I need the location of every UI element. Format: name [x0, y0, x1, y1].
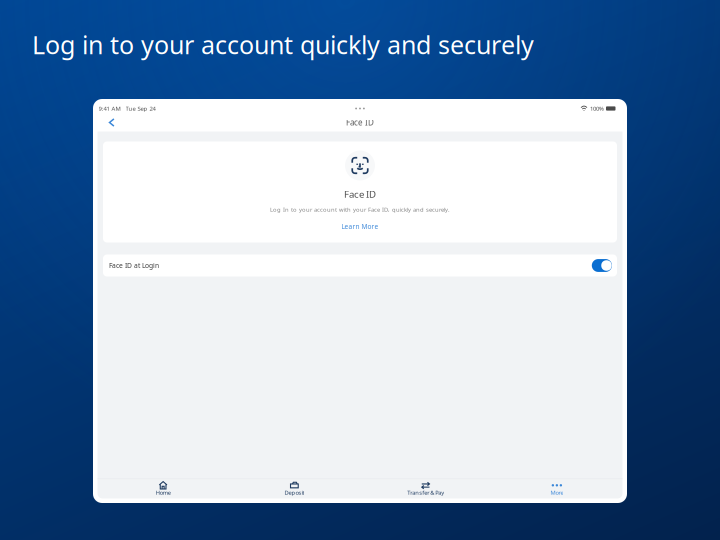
button[interactable]: Home: [97, 479, 229, 498]
staticText: Face ID: [346, 117, 374, 128]
staticText: 9:41 AM: [98, 104, 120, 112]
staticText: Face ID: [344, 187, 376, 201]
staticText: Face ID at Login: [109, 261, 159, 270]
staticText: Transfer & Pay: [407, 488, 444, 496]
button[interactable]: Transfer & Pay: [360, 479, 491, 498]
button[interactable]: Deposit: [229, 479, 360, 498]
staticText: Home: [156, 488, 171, 496]
button[interactable]: Learn More: [338, 220, 381, 232]
staticText: More: [550, 488, 563, 496]
staticText: 100%: [590, 104, 604, 112]
staticText: Learn More: [341, 222, 378, 231]
button[interactable]: Back: [104, 115, 119, 130]
staticText: Log In to your account with your Face ID…: [270, 206, 450, 213]
staticText: Tue Sep 24: [125, 104, 155, 112]
staticText: Log in to your account quickly and secur…: [32, 27, 534, 61]
staticText: Deposit: [284, 488, 304, 496]
button[interactable]: More: [491, 479, 622, 498]
button[interactable]: Face ID at Login: [103, 254, 617, 276]
